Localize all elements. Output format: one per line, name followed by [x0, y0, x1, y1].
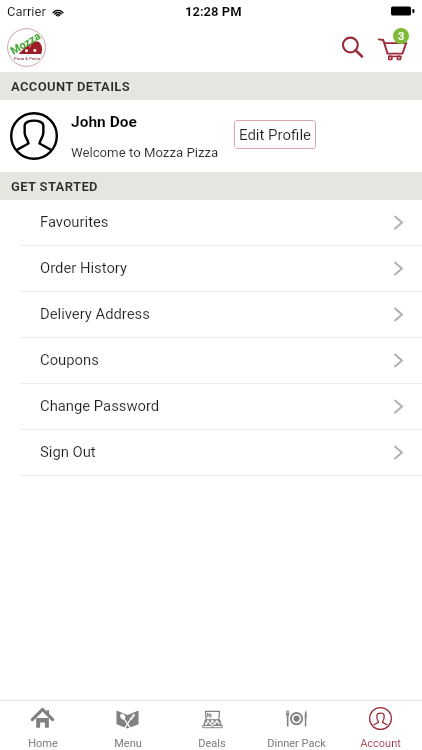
- staticText: ACCOUNT DETAILS: [11, 79, 131, 94]
- staticText: Order History: [40, 259, 128, 276]
- button[interactable]: Favourites: [0, 200, 422, 246]
- button[interactable]: Menu: [85, 701, 170, 750]
- button[interactable]: Search: [335, 30, 369, 64]
- staticText: John Doe: [71, 113, 137, 131]
- button[interactable]: Sign Out: [0, 430, 422, 476]
- button[interactable]: Account: [338, 701, 422, 750]
- button[interactable]: Shopping cart: [374, 28, 410, 64]
- button[interactable]: Order History: [0, 246, 422, 292]
- button[interactable]: Delivery Address: [0, 292, 422, 338]
- staticText: Dinner Pack: [267, 737, 326, 750]
- staticText: Change Password: [40, 397, 160, 414]
- staticText: Pizza & Pasta: [14, 56, 40, 61]
- button[interactable]: Change Password: [0, 384, 422, 430]
- staticText: Carrier: [7, 4, 46, 19]
- button[interactable]: Dinner Pack: [254, 701, 338, 750]
- staticText: 3: [398, 30, 405, 43]
- staticText: Edit Profile: [239, 126, 311, 144]
- staticText: Deals: [198, 737, 226, 750]
- staticText: Favourites: [40, 213, 109, 230]
- button[interactable]: Deals: [170, 701, 254, 750]
- staticText: 12:28 PM: [185, 4, 242, 19]
- button[interactable]: Edit Profile: [234, 120, 316, 149]
- button[interactable]: Coupons: [0, 338, 422, 384]
- staticText: Menu: [114, 737, 142, 750]
- staticText: Account: [360, 737, 401, 750]
- staticText: Welcome to Mozza Pizza: [71, 145, 219, 160]
- staticText: Home: [28, 737, 58, 750]
- staticText: Sign Out: [40, 443, 96, 460]
- staticText: Delivery Address: [40, 305, 150, 322]
- staticText: GET STARTED: [11, 179, 98, 194]
- staticText: Coupons: [40, 351, 99, 368]
- staticText: Mozza: [8, 29, 43, 57]
- button[interactable]: Home: [0, 701, 85, 750]
